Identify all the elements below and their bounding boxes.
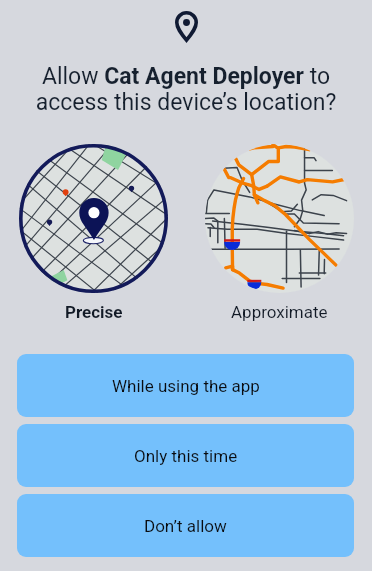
button[interactable]: Only this time	[17, 424, 354, 487]
staticText: Precise	[65, 302, 123, 322]
button[interactable]	[205, 144, 354, 293]
staticText: Only this time	[134, 446, 238, 466]
button[interactable]: Don’t allow	[17, 494, 354, 557]
staticText: While using the app	[112, 376, 260, 396]
staticText: Don’t allow	[144, 516, 227, 536]
button[interactable]: While using the app	[17, 354, 354, 417]
staticText: Approximate	[231, 302, 328, 322]
staticText: Allow Cat Agent Deployer to access this …	[20, 63, 352, 115]
button[interactable]	[19, 144, 168, 293]
